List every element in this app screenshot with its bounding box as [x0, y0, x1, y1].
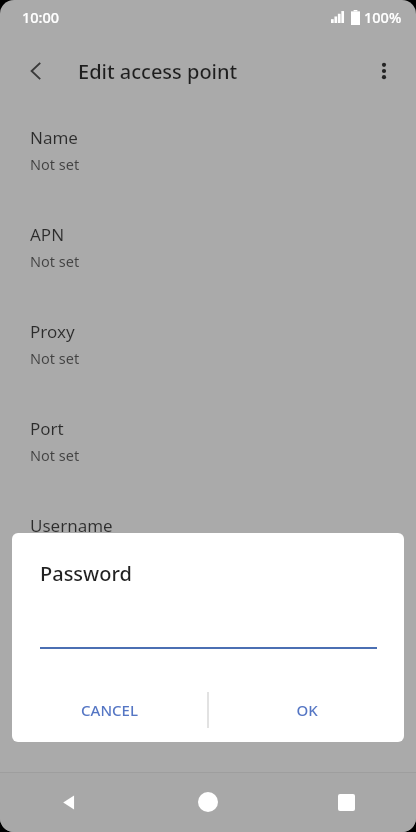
- button[interactable]: OK: [209, 685, 404, 735]
- button[interactable]: Password: [0, 593, 416, 690]
- button[interactable]: Recent apps: [277, 772, 416, 832]
- staticText: Username: [30, 514, 113, 537]
- button[interactable]: More options: [362, 49, 406, 93]
- button[interactable]: Proxy: [0, 302, 416, 399]
- staticText: CANCEL: [81, 700, 138, 720]
- button[interactable]: Username: [0, 496, 416, 593]
- staticText: Edit access point: [78, 58, 238, 85]
- button[interactable]: Back: [14, 49, 58, 93]
- button[interactable]: Back: [0, 772, 138, 832]
- staticText: 10:00: [22, 7, 60, 27]
- staticText: Port: [30, 417, 64, 440]
- staticText: Not set: [30, 251, 80, 271]
- staticText: Password: [40, 560, 132, 587]
- staticText: Not set: [30, 348, 80, 368]
- staticText: Not set: [30, 445, 80, 465]
- button[interactable]: Home: [138, 772, 277, 832]
- button[interactable]: APN: [0, 205, 416, 302]
- button[interactable]: Name: [0, 108, 416, 205]
- staticText: Not set: [30, 154, 80, 174]
- staticText: OK: [296, 700, 318, 720]
- staticText: APN: [30, 223, 65, 246]
- staticText: Not set: [30, 639, 80, 659]
- staticText: 100%: [364, 7, 402, 27]
- button[interactable]: Port: [0, 399, 416, 496]
- staticText: Proxy: [30, 320, 75, 343]
- button[interactable]: CANCEL: [12, 685, 207, 735]
- staticText: Name: [30, 126, 78, 149]
